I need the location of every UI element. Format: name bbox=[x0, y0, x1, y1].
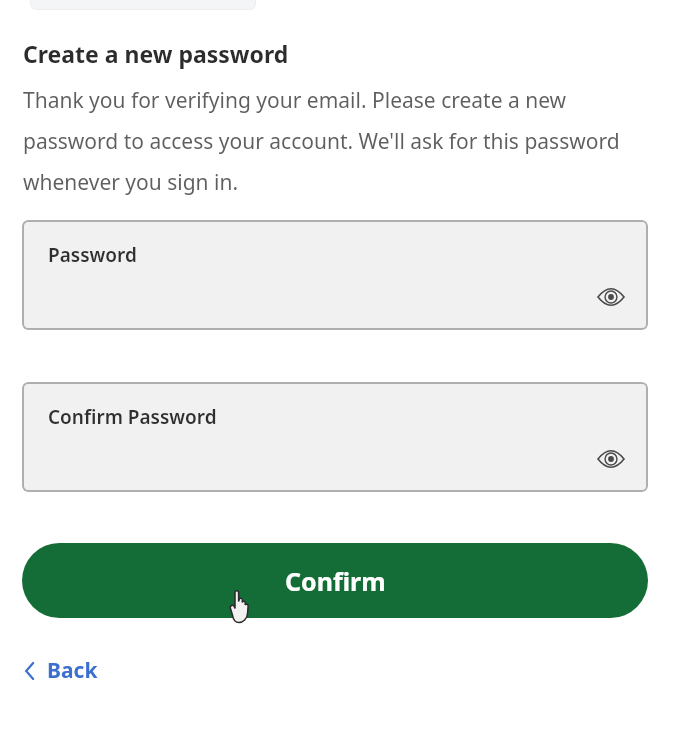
staticText: Confirm bbox=[285, 564, 386, 598]
staticText: Create a new password bbox=[23, 38, 289, 69]
staticText: Password bbox=[48, 242, 137, 268]
staticText: Thank you for verifying your email. Plea… bbox=[23, 86, 656, 196]
button[interactable]: Confirm Password bbox=[22, 382, 648, 492]
staticText: Back bbox=[47, 656, 98, 685]
staticText: Confirm Password bbox=[48, 404, 217, 430]
button[interactable]: Show password bbox=[592, 440, 630, 478]
button[interactable]: Confirm bbox=[22, 543, 648, 618]
button[interactable]: Password bbox=[22, 220, 648, 330]
button[interactable]: Back bbox=[22, 656, 98, 685]
button[interactable]: Show password bbox=[592, 278, 630, 316]
